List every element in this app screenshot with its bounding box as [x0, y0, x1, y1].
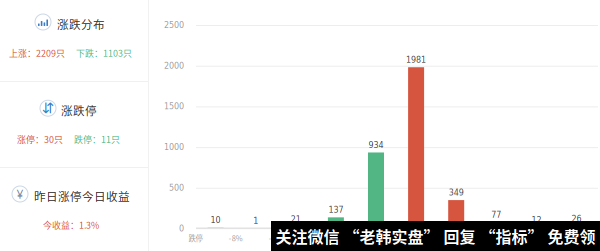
staticText: 今收益：1.3%: [43, 218, 99, 231]
button[interactable]: ¥: [0, 172, 150, 251]
button[interactable]: ⇵: [0, 86, 150, 169]
staticText: 77: [491, 210, 501, 219]
staticText: -1%: [349, 232, 363, 243]
staticText: ⇵: [42, 100, 54, 116]
staticText: 12: [531, 215, 541, 225]
staticText: 21: [291, 215, 301, 224]
staticText: 0: [394, 232, 398, 243]
staticText: 下跌：1103只: [76, 46, 132, 59]
staticText: -5%: [269, 232, 283, 243]
staticText: ¥: [16, 186, 23, 202]
staticText: 关注微信 “老韩实盘” 回复 “指标” 免费领: [275, 224, 595, 248]
staticText: 涨跌停: [61, 102, 97, 118]
staticText: 涨停: [589, 232, 600, 243]
staticText: 10: [211, 216, 221, 225]
button[interactable]: 涨跌分布: [0, 0, 150, 83]
staticText: 昨日涨停今日收益: [34, 187, 130, 204]
staticText: 137: [328, 205, 343, 215]
staticText: 0: [179, 224, 184, 233]
staticText: 349: [449, 188, 464, 197]
staticText: 1: [253, 216, 258, 226]
staticText: 上涨：2209只: [9, 46, 65, 59]
staticText: 涨跌分布: [57, 15, 105, 32]
staticText: 1981: [406, 55, 426, 64]
staticText: 跌停: [188, 232, 202, 243]
staticText: 8%: [551, 232, 562, 243]
staticText: 2500: [164, 20, 184, 30]
staticText: 500: [169, 183, 184, 193]
staticText: 1000: [164, 143, 184, 152]
staticText: 26: [571, 214, 581, 224]
staticText: 5%: [511, 232, 522, 243]
staticText: -3%: [309, 232, 323, 243]
staticText: 1500: [164, 102, 184, 111]
staticText: 涨停：30只: [17, 133, 63, 146]
staticText: 3%: [471, 232, 482, 243]
staticText: 934: [368, 140, 383, 150]
staticText: 跌停：11只: [74, 133, 120, 146]
staticText: 2000: [164, 61, 184, 70]
staticText: -8%: [229, 232, 243, 243]
